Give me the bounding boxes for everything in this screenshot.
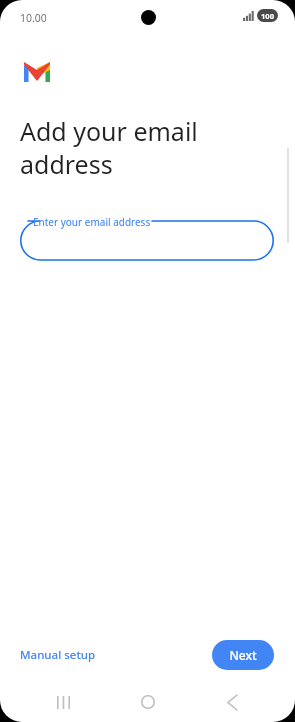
button[interactable]: Recents bbox=[45, 684, 81, 720]
button[interactable]: Manual setup bbox=[20, 641, 96, 669]
staticText: 10.00 bbox=[20, 11, 47, 25]
button[interactable]: Next bbox=[212, 640, 274, 670]
button[interactable]: Back bbox=[214, 684, 250, 720]
button[interactable]: Enter your email address bbox=[20, 213, 274, 261]
staticText: Add your email address bbox=[20, 114, 198, 181]
staticText: Manual setup bbox=[20, 647, 96, 663]
staticText: 100 bbox=[261, 11, 274, 21]
staticText: Enter your email address bbox=[33, 215, 151, 229]
staticText: Next bbox=[229, 647, 257, 663]
button[interactable]: Home bbox=[130, 684, 166, 720]
